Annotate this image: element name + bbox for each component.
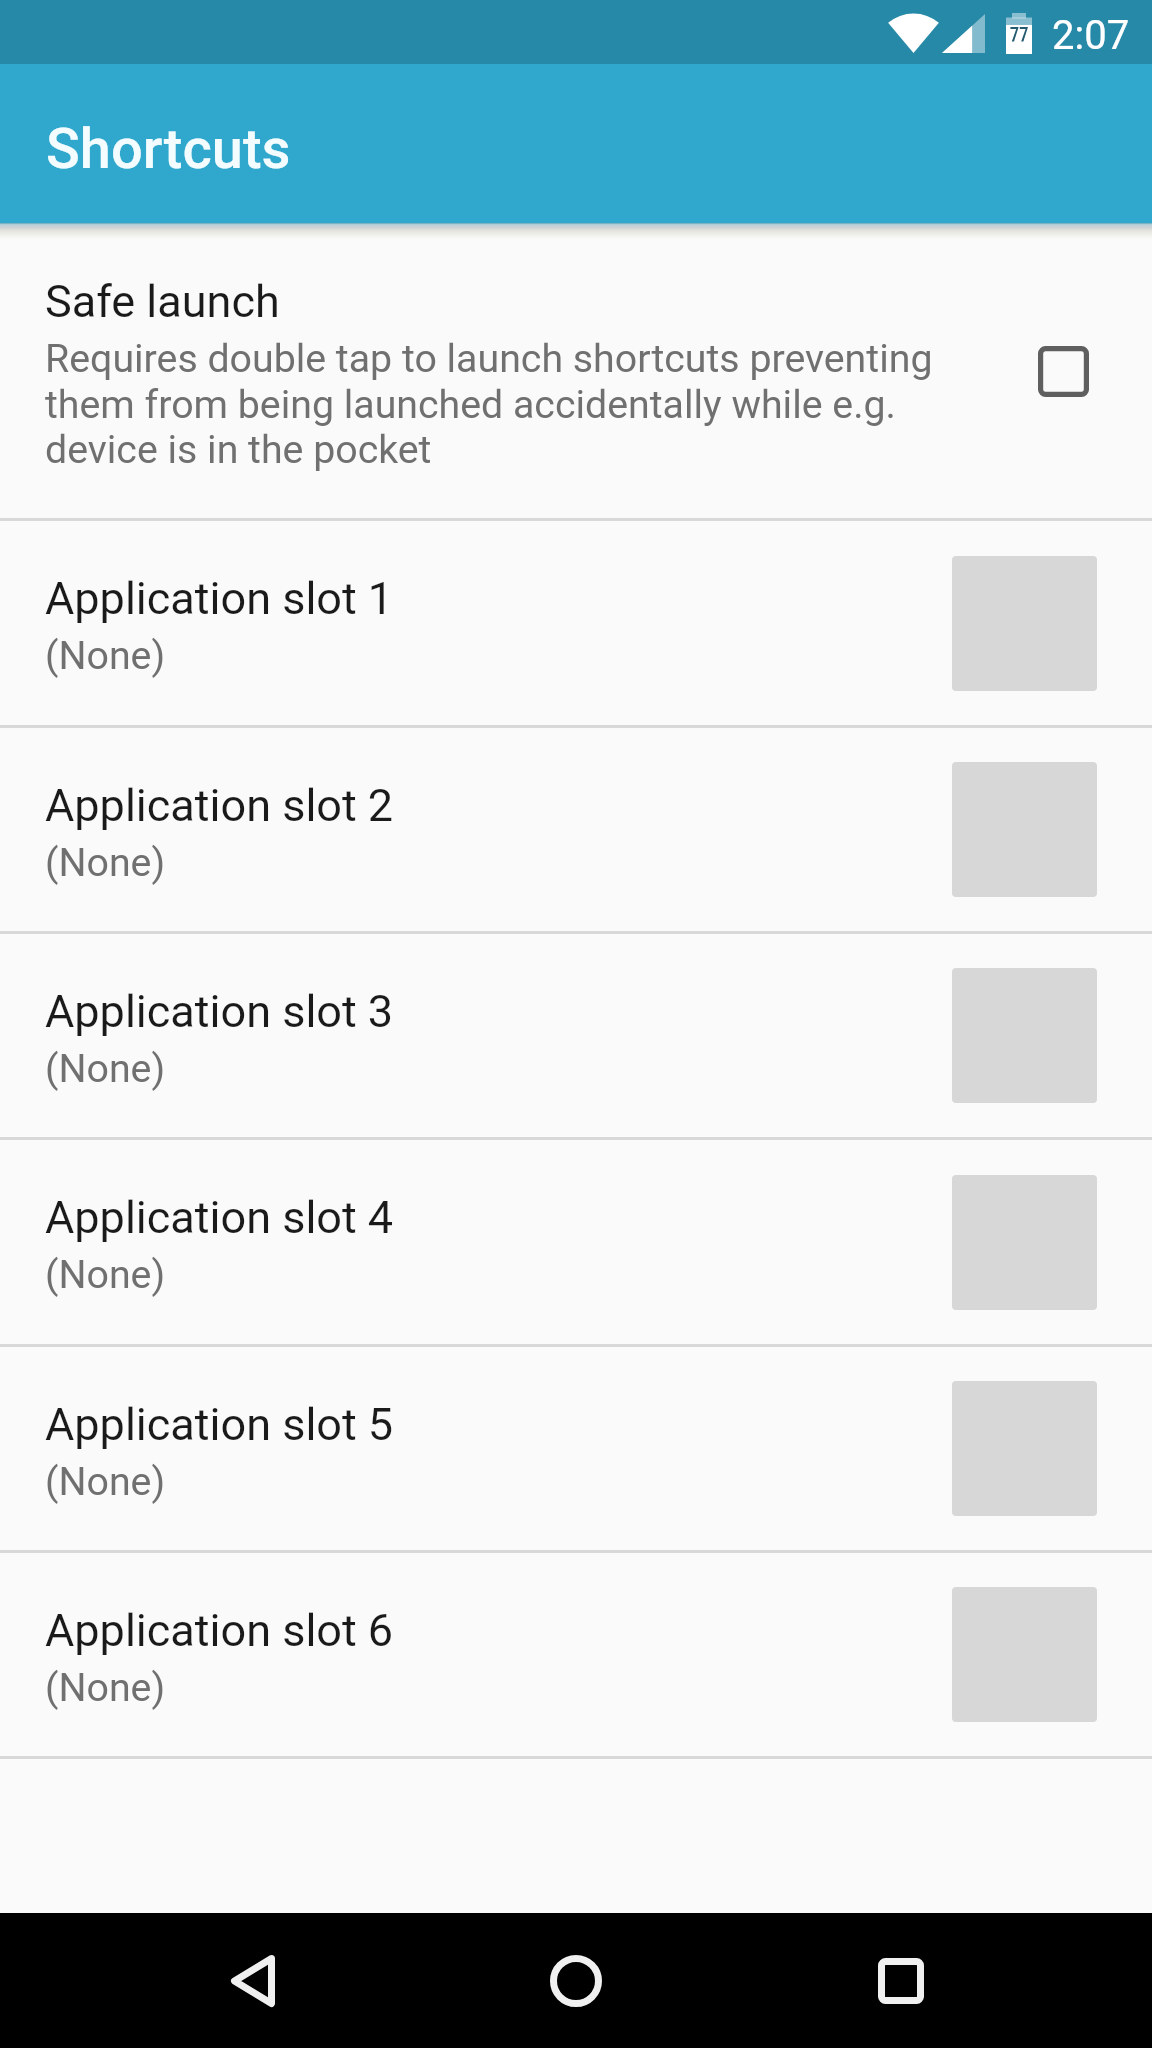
staticText: (None) bbox=[45, 1665, 166, 1711]
staticText: Application slot 4 bbox=[45, 1191, 394, 1244]
staticText: Application slot 5 bbox=[45, 1398, 394, 1451]
staticText: Shortcuts bbox=[46, 116, 291, 182]
staticText: Application slot 6 bbox=[45, 1604, 394, 1657]
button[interactable]: Safe launch checkbox bbox=[1020, 328, 1106, 414]
staticText: (None) bbox=[45, 1252, 166, 1298]
button[interactable]: Application slot 2 bbox=[0, 728, 1152, 931]
staticText: 2:07 bbox=[1052, 12, 1130, 59]
staticText: (None) bbox=[45, 1459, 166, 1505]
staticText: Safe launch bbox=[45, 275, 280, 328]
staticText: Requires double tap to launch shortcuts … bbox=[45, 336, 933, 473]
button[interactable]: Safe launch bbox=[0, 223, 1152, 518]
staticText: Application slot 2 bbox=[45, 779, 394, 832]
staticText: (None) bbox=[45, 633, 166, 679]
staticText: Application slot 1 bbox=[45, 572, 394, 625]
button[interactable]: Application slot 6 bbox=[0, 1553, 1152, 1756]
button[interactable]: Back bbox=[190, 1918, 316, 2044]
button[interactable]: Home bbox=[513, 1918, 639, 2044]
button[interactable]: Application slot 5 bbox=[0, 1347, 1152, 1550]
staticText: (None) bbox=[45, 840, 166, 886]
button[interactable]: Recent apps bbox=[838, 1918, 964, 2044]
staticText: (None) bbox=[45, 1046, 166, 1092]
staticText: Application slot 3 bbox=[45, 985, 394, 1038]
button[interactable]: Application slot 3 bbox=[0, 934, 1152, 1137]
button[interactable]: Application slot 1 bbox=[0, 521, 1152, 725]
button[interactable]: Application slot 4 bbox=[0, 1140, 1152, 1344]
